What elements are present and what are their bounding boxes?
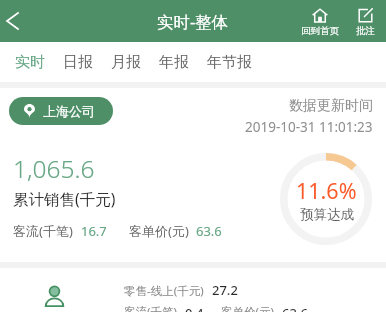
staticText: 客流(千笔) (124, 304, 177, 312)
staticText: 批注 (356, 25, 375, 37)
staticText: 63.6 (196, 222, 222, 240)
staticText: 累计销售(千元) (13, 188, 116, 209)
button[interactable]: 月报 (102, 45, 150, 80)
staticText: 回到首页 (301, 25, 339, 37)
staticText: 2019-10-31 11:01:23 (245, 118, 373, 136)
staticText: 63.6 (282, 304, 308, 312)
staticText: 日报 (63, 53, 93, 72)
staticText: 16.7 (81, 222, 107, 240)
staticText: 客单价(元) (129, 222, 189, 240)
staticText: 1,065.6 (13, 152, 95, 185)
staticText: 月报 (111, 53, 141, 72)
staticText: 预算达成 (300, 206, 354, 223)
staticText: 0.4 (185, 304, 204, 312)
button[interactable]: 上海公司 (9, 97, 113, 125)
staticText: 客单价(元) (221, 304, 274, 312)
staticText: 上海公司 (43, 103, 95, 119)
staticText: 实时-整体 (157, 10, 229, 33)
button[interactable]: Back (0, 0, 24, 42)
staticText: 年报 (159, 53, 189, 72)
staticText: 27.2 (212, 281, 238, 299)
button[interactable]: 年节报 (198, 45, 261, 80)
button[interactable]: 回到首页 (300, 0, 340, 42)
staticText: 数据更新时间 (289, 97, 373, 115)
button[interactable]: 零售-线上(千元) (0, 276, 386, 312)
button[interactable]: 年报 (150, 45, 198, 80)
button[interactable]: 日报 (54, 45, 102, 80)
staticText: 零售-线上(千元) (124, 283, 204, 299)
staticText: 实时 (15, 53, 45, 72)
staticText: 11.6% (296, 176, 357, 205)
button[interactable]: 实时 (6, 45, 54, 80)
staticText: 客流(千笔) (13, 222, 73, 240)
staticText: 年节报 (207, 53, 252, 72)
button[interactable]: 批注 (347, 0, 383, 42)
